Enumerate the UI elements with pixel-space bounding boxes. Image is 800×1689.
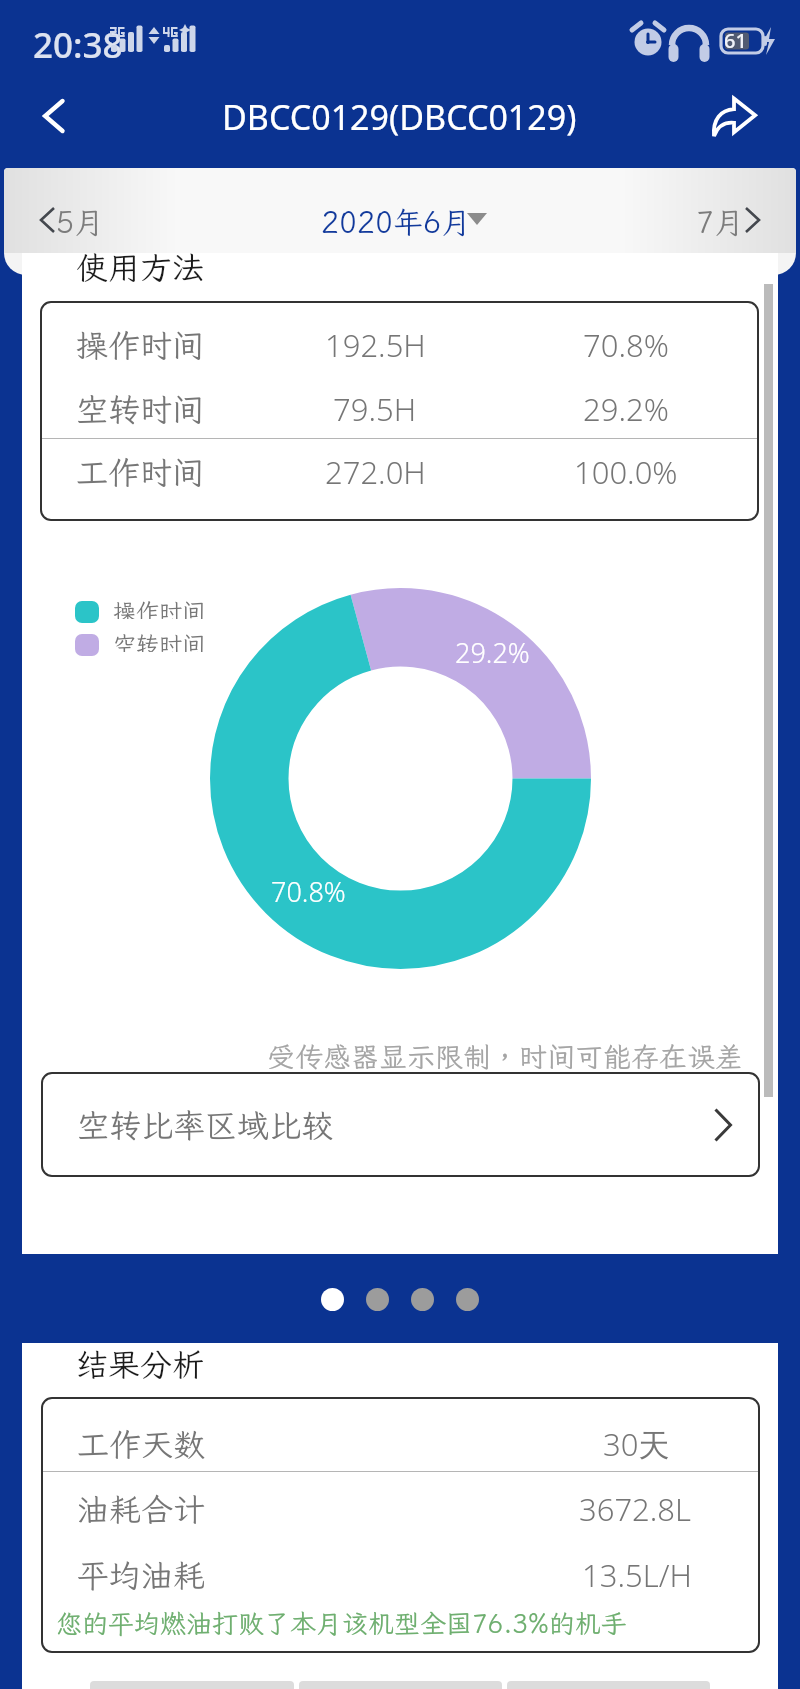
staticText: 29.2%: [455, 634, 530, 670]
staticText: 空转比率区域比较: [77, 1104, 334, 1146]
staticText: 空转时间: [113, 629, 205, 652]
staticText: 272.0H: [325, 451, 426, 493]
button[interactable]: Back: [17, 78, 89, 154]
staticText: 30天: [603, 1423, 670, 1465]
staticText: 空转时间: [76, 388, 205, 430]
staticText: 100.0%: [574, 451, 678, 493]
staticText: 29.2%: [583, 388, 669, 430]
button[interactable]: [321, 1288, 344, 1311]
staticText: 使用方法: [76, 246, 205, 288]
staticText: 70.8%: [271, 873, 346, 909]
button[interactable]: [411, 1288, 434, 1311]
button[interactable]: 空转比率区域比较: [41, 1072, 760, 1177]
button[interactable]: 2020年6月: [246, 178, 566, 248]
button[interactable]: 7月: [600, 178, 780, 248]
staticText: 您的平均燃油打败了本月该机型全国76.3%的机手: [56, 1606, 627, 1640]
staticText: 20:38: [33, 21, 123, 69]
staticText: 61: [724, 27, 747, 54]
staticText: 3672.8L: [579, 1488, 692, 1530]
staticText: DBCC0129(DBCC0129): [222, 94, 577, 140]
staticText: 受传感器显示限制，时间可能存在误差: [267, 1038, 744, 1075]
staticText: 70.8%: [583, 324, 669, 366]
staticText: 2020年6月: [321, 202, 471, 242]
staticText: 79.5H: [333, 388, 417, 430]
staticText: 结果分析: [76, 1343, 205, 1385]
button[interactable]: 5月: [20, 178, 200, 248]
staticText: 平均油耗: [77, 1554, 582, 1596]
button[interactable]: [366, 1288, 389, 1311]
staticText: 工作天数: [77, 1423, 603, 1465]
staticText: 7月: [696, 202, 744, 242]
staticText: 13.5L/H: [582, 1554, 692, 1596]
staticText: 油耗合计: [77, 1488, 579, 1530]
button[interactable]: [456, 1288, 479, 1311]
button[interactable]: Share: [695, 76, 773, 158]
staticText: 工作时间: [76, 451, 205, 493]
staticText: 5月: [56, 202, 104, 242]
staticText: 192.5H: [325, 324, 426, 366]
staticText: 操作时间: [113, 596, 205, 619]
staticText: 操作时间: [76, 324, 205, 366]
